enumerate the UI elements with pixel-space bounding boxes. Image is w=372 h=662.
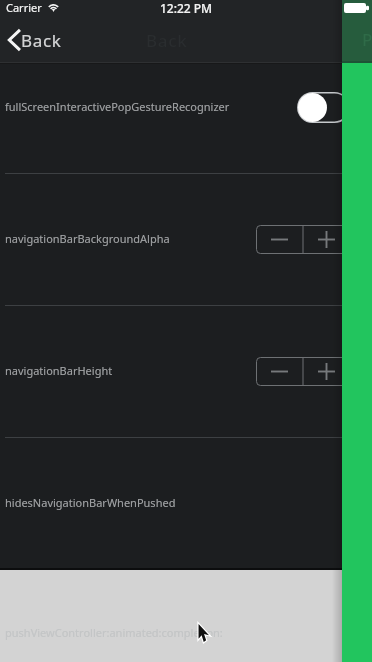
staticText: 12:22 PM [0, 0, 372, 16]
staticText: fullScreenInteractivePopGestureRecognize… [5, 99, 230, 114]
button[interactable]: fullScreenInteractivePopGestureRecognize… [0, 41, 342, 173]
other: Battery full [344, 3, 369, 13]
staticText: hidesNavigationBarWhenPushed [5, 495, 176, 510]
staticText: navigationBarBackgroundAlpha [5, 231, 170, 246]
button[interactable]: hidesNavigationBarWhenPushed [0, 437, 342, 569]
button[interactable]: Stepper [256, 357, 350, 386]
staticText: Back [21, 29, 62, 52]
staticText: Push [362, 28, 372, 51]
button[interactable]: navigationBarHeight [0, 305, 342, 437]
button[interactable]: fullScreenInteractivePopGestureRecognize… [297, 92, 350, 123]
button[interactable]: Back [8, 24, 62, 56]
staticText: pushViewController:animated:completion: [5, 625, 223, 640]
staticText: Carrier [6, 0, 42, 15]
staticText: navigationBarHeight [5, 363, 113, 378]
button[interactable]: navigationBarBackgroundAlpha [0, 173, 342, 305]
button[interactable]: Stepper [256, 225, 350, 254]
